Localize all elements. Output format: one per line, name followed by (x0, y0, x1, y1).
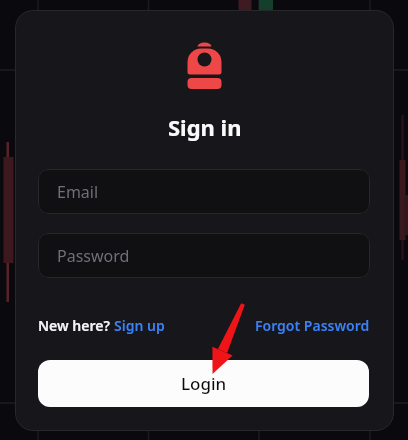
button[interactable]: Password (38, 233, 370, 278)
button[interactable]: New here? (38, 316, 165, 335)
button[interactable]: Forgot Password (255, 316, 370, 335)
staticText: Sign up (114, 316, 165, 335)
staticText: Sign in (168, 112, 242, 142)
staticText: New here? (38, 316, 114, 335)
staticText: Email (57, 181, 99, 203)
staticText: Password (57, 245, 130, 267)
button[interactable]: Email (38, 169, 370, 214)
staticText: Login (181, 372, 227, 395)
button[interactable]: Login (38, 360, 369, 407)
